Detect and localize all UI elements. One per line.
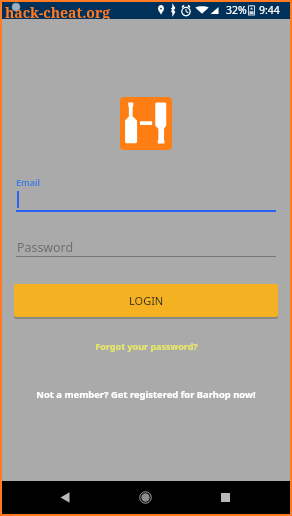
staticText: 32% bbox=[226, 3, 247, 17]
staticText: Password bbox=[17, 239, 74, 256]
button[interactable]: Home bbox=[119, 481, 171, 514]
staticText: 9:44 bbox=[259, 3, 280, 17]
button[interactable]: LOGIN bbox=[14, 284, 278, 317]
staticText: LOGIN bbox=[129, 293, 164, 308]
staticText: Email bbox=[16, 176, 41, 188]
button[interactable]: Forgot your password? bbox=[2, 340, 290, 352]
staticText: hack-cheat.org bbox=[5, 3, 111, 20]
button[interactable]: Back bbox=[39, 481, 91, 514]
button[interactable]: Recents bbox=[199, 481, 251, 514]
staticText: Forgot your password? bbox=[95, 340, 198, 352]
staticText: Not a member? Get registered for Barhop … bbox=[36, 388, 256, 401]
button[interactable]: Not a member? Get registered for Barhop … bbox=[2, 388, 290, 401]
